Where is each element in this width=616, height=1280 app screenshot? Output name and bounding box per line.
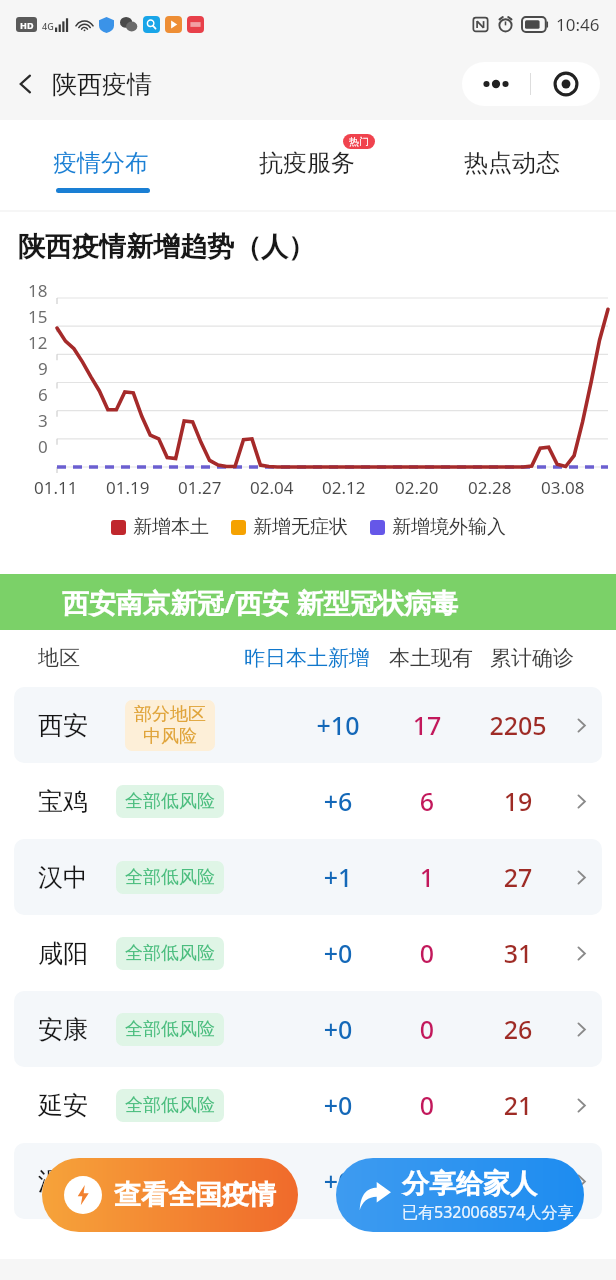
staticText: 各地区疫情情况 [18, 578, 207, 612]
staticText: 02.28 [468, 476, 541, 499]
button[interactable]: 咸阳 [14, 915, 602, 991]
staticText: 查看全国疫情 [114, 1178, 276, 1212]
button[interactable]: 汉中 [14, 839, 602, 915]
staticText: 西安南京新冠/西安 新型冠状病毒 [62, 584, 459, 621]
button[interactable]: 热点动态 [411, 120, 616, 210]
staticText: 热点动态 [464, 148, 560, 178]
staticText: 02.12 [322, 476, 395, 499]
staticText: 18 [28, 279, 48, 302]
staticText: +6 [292, 784, 384, 818]
staticText: 抗疫服务 [259, 148, 355, 178]
staticText: +0 [292, 1164, 384, 1198]
staticText: 26 [470, 1012, 566, 1046]
staticText: HD [20, 19, 34, 31]
button[interactable]: 目标 [531, 62, 600, 106]
button[interactable]: 西安 [14, 687, 602, 763]
staticText: 全部低风险 [125, 1170, 215, 1193]
staticText: 新增本土 [133, 515, 209, 539]
button[interactable]: 查看全国疫情 [42, 1158, 298, 1232]
button[interactable]: 各地区疫情情况 [18, 561, 598, 629]
staticText: 3 [38, 409, 48, 432]
staticText: 0 [384, 936, 470, 970]
button[interactable]: 分享给家人 [336, 1158, 584, 1232]
staticText: +0 [292, 936, 384, 970]
staticText: 01.19 [106, 476, 178, 499]
staticText: 陕西疫情 [52, 69, 152, 100]
staticText: 疫情分布 [53, 148, 149, 178]
staticText: 0 [38, 435, 48, 458]
staticText: 02.04 [250, 476, 322, 499]
staticText: 31 [470, 936, 566, 970]
staticText: +0 [292, 1012, 384, 1046]
staticText: +1 [292, 860, 384, 894]
staticText: 4G [42, 20, 54, 32]
staticText: 01.27 [178, 476, 250, 499]
staticText: 03.08 [541, 476, 614, 499]
staticText: 安康 [38, 1014, 100, 1045]
staticText: 19 [470, 784, 566, 818]
staticText: 01.11 [34, 476, 106, 499]
staticText: 全部低风险 [125, 866, 215, 889]
button[interactable]: 返回 [0, 58, 52, 110]
staticText: 全部低风险 [125, 942, 215, 965]
staticText: 延安 [38, 1090, 100, 1121]
button[interactable]: 延安 [14, 1067, 602, 1143]
staticText: 新增境外输入 [392, 515, 506, 539]
staticText: 昨日本土新增 [244, 645, 382, 671]
staticText: 汉中 [38, 862, 100, 893]
staticText: 分享给家人 [402, 1167, 537, 1201]
staticText: 9 [38, 357, 48, 380]
button[interactable]: 安康 [14, 991, 602, 1067]
staticText: 陕西疫情新增趋势（人） [18, 230, 315, 264]
button[interactable]: 疫情分布 [0, 120, 206, 210]
staticText: 本土现有 [382, 645, 480, 671]
staticText: 21 [470, 1088, 566, 1122]
staticText: 全部低风险 [125, 1094, 215, 1117]
staticText: 02.20 [395, 476, 468, 499]
staticText: 渭南 [38, 1166, 100, 1197]
staticText: +10 [292, 708, 384, 742]
staticText: 咸阳 [38, 938, 100, 969]
staticText: 2205 [470, 708, 566, 742]
staticText: 已有5320068574人分享 [402, 1201, 574, 1223]
staticText: +0 [292, 1088, 384, 1122]
staticText: 宝鸡 [38, 786, 100, 817]
staticText: 1 [384, 860, 470, 894]
staticText: 新增无症状 [253, 515, 348, 539]
staticText: 27 [470, 860, 566, 894]
staticText: 17 [384, 708, 470, 742]
staticText: 地区 [38, 645, 80, 671]
staticText: 18 [470, 1164, 566, 1198]
staticText: 0 [384, 1164, 470, 1198]
staticText: 全部低风险 [125, 1018, 215, 1041]
staticText: 10:46 [556, 13, 600, 36]
staticText: 15 [28, 305, 48, 328]
staticText: 12 [28, 331, 48, 354]
button[interactable]: 抗疫服务 [206, 120, 411, 210]
staticText: 西安 [38, 710, 100, 741]
staticText: 0 [384, 1088, 470, 1122]
button[interactable]: 宝鸡 [14, 763, 602, 839]
button[interactable]: 渭南 [14, 1143, 602, 1219]
staticText: 6 [384, 784, 470, 818]
staticText: 0 [384, 1012, 470, 1046]
staticText: 6 [38, 383, 48, 406]
staticText: 全部低风险 [125, 790, 215, 813]
staticText: 累计确诊 [480, 645, 584, 671]
button[interactable]: 更多 [462, 62, 530, 106]
staticText: 热门 [349, 135, 369, 148]
staticText: 部分地区 中风险 [134, 703, 206, 748]
staticText: 10个中高风险地区 [413, 582, 576, 609]
